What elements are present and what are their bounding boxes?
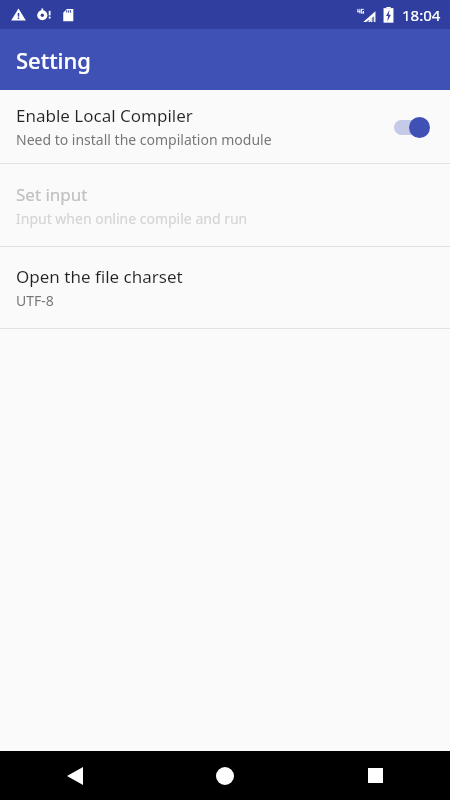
button[interactable]: Open the file charset: [0, 247, 450, 328]
staticText: UTF-8: [16, 291, 54, 310]
staticText: Open the file charset: [16, 265, 183, 288]
button[interactable]: Enable Local Compiler: [0, 90, 450, 163]
staticText: 18:04: [402, 5, 441, 25]
staticText: Need to install the compilation module: [16, 130, 272, 149]
button[interactable]: Toggle Enable Local Compiler: [388, 110, 434, 144]
staticText: Enable Local Compiler: [16, 104, 193, 127]
button[interactable]: Set input: [0, 164, 450, 246]
button[interactable]: Home: [150, 751, 300, 800]
staticText: Set input: [16, 183, 88, 206]
button[interactable]: Recent apps: [300, 751, 450, 800]
button[interactable]: Back: [0, 751, 150, 800]
staticText: Setting: [16, 45, 91, 75]
staticText: Input when online compile and run: [16, 209, 248, 228]
